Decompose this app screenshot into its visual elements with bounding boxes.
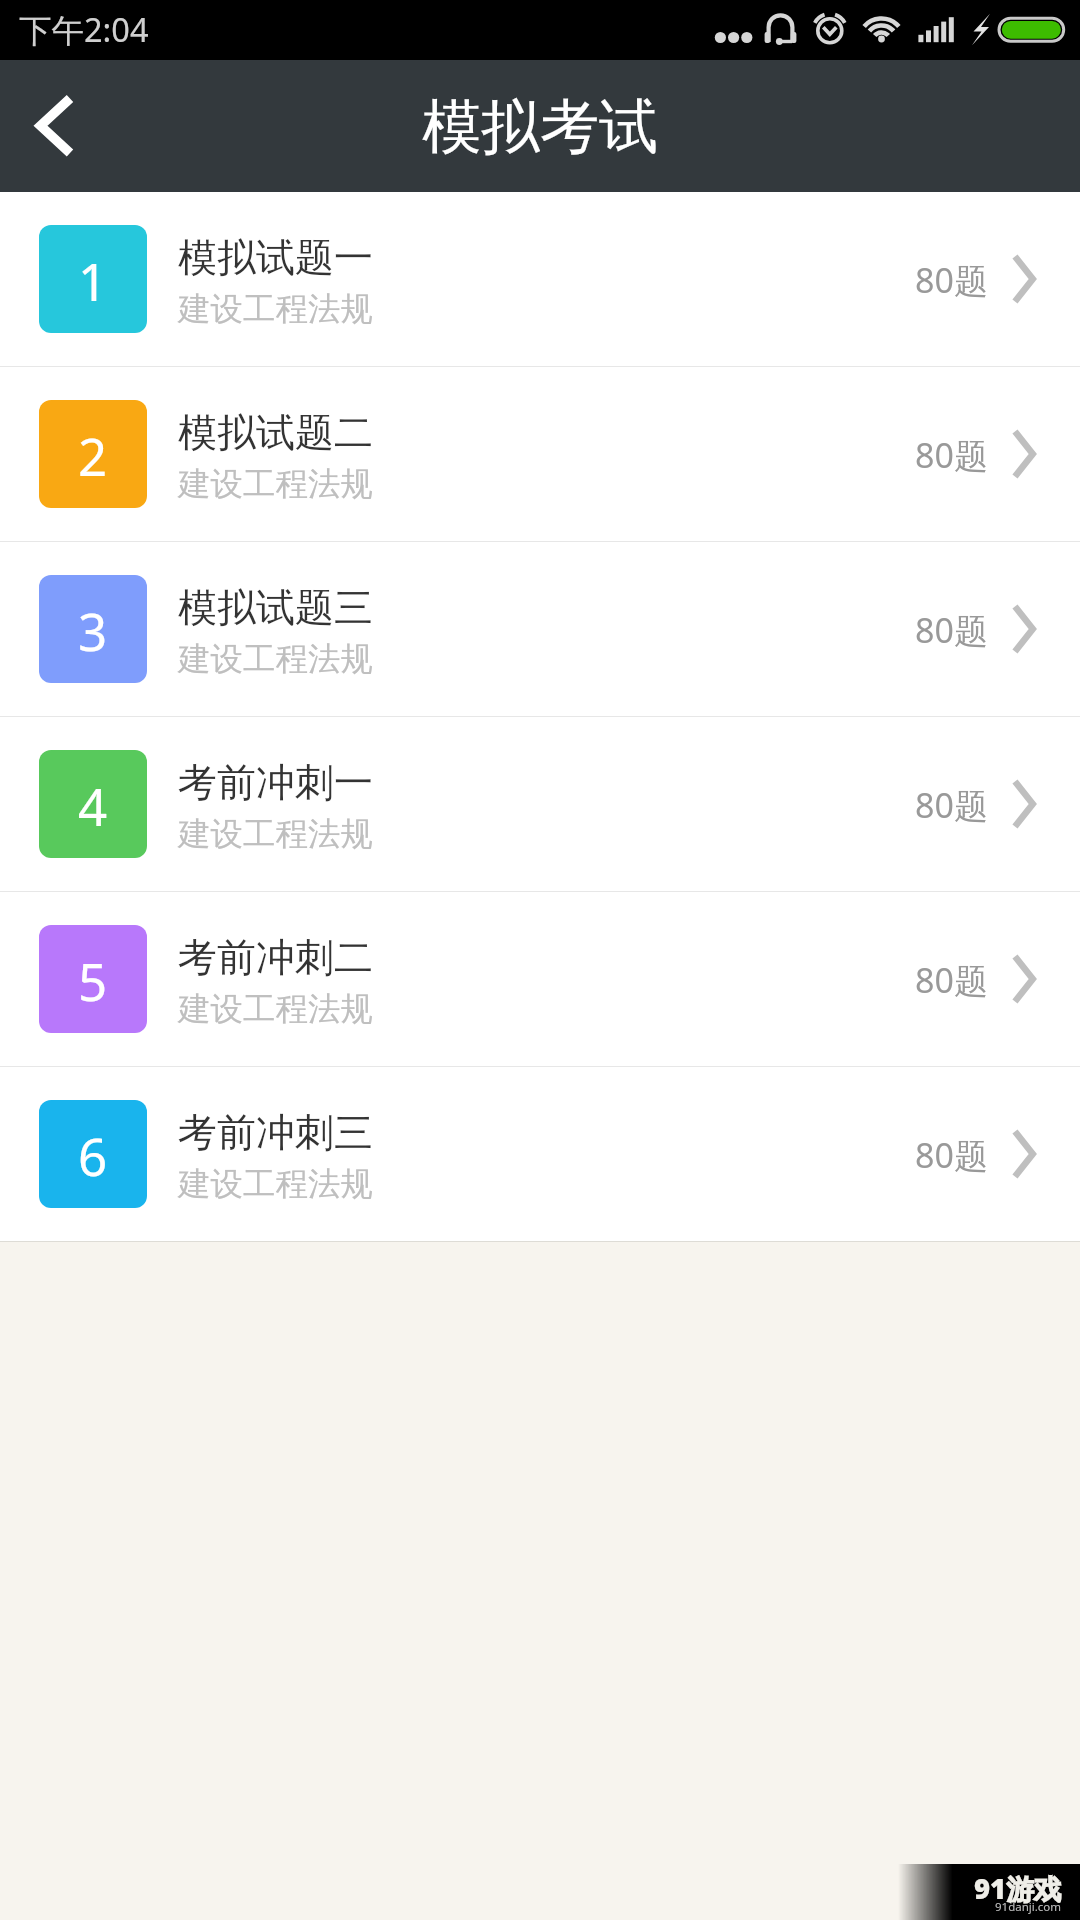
staticText: 3 — [78, 596, 108, 665]
staticText: 91游戏 — [974, 1870, 1062, 1908]
button[interactable]: 5 — [0, 892, 1080, 1066]
staticText: 建设工程法规 — [178, 639, 373, 680]
staticText: 模拟试题二 — [178, 408, 373, 457]
staticText: 1 — [78, 246, 108, 315]
staticText: 2 — [78, 421, 108, 490]
button[interactable]: 4 — [0, 717, 1080, 891]
staticText: 80题 — [915, 1132, 988, 1178]
staticText: 建设工程法规 — [178, 289, 373, 330]
staticText: 考前冲刺三 — [178, 1108, 373, 1157]
staticText: 80题 — [915, 432, 988, 478]
staticText: 考前冲刺二 — [178, 933, 373, 982]
staticText: 建设工程法规 — [178, 464, 373, 505]
staticText: 80题 — [915, 957, 988, 1003]
staticText: 模拟考试 — [422, 90, 658, 164]
button[interactable]: 3 — [0, 542, 1080, 716]
staticText: 建设工程法规 — [178, 989, 373, 1030]
staticText: 5 — [78, 946, 108, 1015]
staticText: 6 — [78, 1121, 108, 1190]
staticText: 4 — [78, 771, 108, 840]
staticText: 模拟试题一 — [178, 233, 373, 282]
staticText: 80题 — [915, 607, 988, 653]
staticText: 80题 — [915, 782, 988, 828]
staticText: 考前冲刺一 — [178, 758, 373, 807]
button[interactable]: 返回 — [0, 60, 108, 192]
button[interactable]: 2 — [0, 367, 1080, 541]
button[interactable]: 1 — [0, 192, 1080, 366]
button[interactable]: 6 — [0, 1067, 1080, 1241]
staticText: 建设工程法规 — [178, 814, 373, 855]
staticText: 80题 — [915, 257, 988, 303]
staticText: 模拟试题三 — [178, 583, 373, 632]
staticText: 91danji.com — [995, 1899, 1062, 1915]
staticText: 建设工程法规 — [178, 1164, 373, 1205]
staticText: 下午2:04 — [19, 7, 149, 51]
